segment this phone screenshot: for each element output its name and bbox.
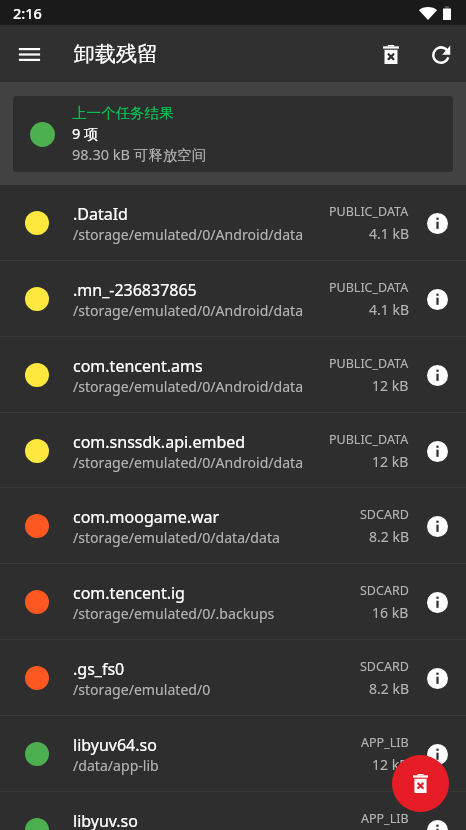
button[interactable]: Info: [419, 584, 455, 620]
button[interactable]: Info: [419, 736, 455, 772]
staticText: 2:16: [13, 3, 42, 23]
button[interactable]: .mn_-236837865: [0, 261, 466, 337]
staticText: 8.2 kB: [369, 527, 409, 546]
button[interactable]: Info: [419, 812, 455, 830]
staticText: 8.2 kB: [369, 679, 409, 698]
staticText: /storage/emulated/0: [73, 680, 211, 699]
staticText: /storage/emulated/0/Android/data: [73, 377, 304, 396]
staticText: com.snssdk.api.embed: [73, 431, 246, 453]
staticText: APP_LIB: [361, 810, 409, 827]
staticText: 9 项: [72, 123, 99, 143]
staticText: com.moogame.war: [73, 506, 220, 528]
button[interactable]: .gs_fs0: [0, 640, 466, 716]
staticText: APP_LIB: [361, 734, 409, 751]
staticText: PUBLIC_DATA: [329, 431, 409, 448]
button[interactable]: libyuv64.so: [0, 716, 466, 792]
staticText: 12 kB: [372, 755, 409, 774]
button[interactable]: Info: [419, 357, 455, 393]
button[interactable]: Info: [419, 205, 455, 241]
button[interactable]: Menu: [11, 36, 47, 72]
button[interactable]: Info: [419, 508, 455, 544]
staticText: com.tencent.ams: [73, 355, 203, 377]
staticText: /storage/emulated/0/Android/data: [73, 225, 304, 244]
staticText: .DataId: [73, 203, 128, 225]
staticText: 12 kB: [372, 452, 409, 471]
button[interactable]: com.tencent.ig: [0, 564, 466, 640]
staticText: 4.1 kB: [369, 224, 409, 243]
button[interactable]: Info: [419, 660, 455, 696]
button[interactable]: Delete all: [372, 35, 410, 73]
button[interactable]: com.tencent.ams: [0, 337, 466, 413]
button[interactable]: com.moogame.war: [0, 488, 466, 564]
staticText: /storage/emulated/0/data/data: [73, 528, 280, 547]
button[interactable]: Refresh: [422, 35, 460, 73]
staticText: SDCARD: [360, 582, 409, 599]
staticText: .gs_fs0: [73, 658, 125, 680]
staticText: PUBLIC_DATA: [329, 203, 409, 220]
staticText: 上一个任务结果: [72, 104, 174, 122]
staticText: 98.30 kB 可释放空间: [72, 144, 207, 164]
staticText: PUBLIC_DATA: [329, 355, 409, 372]
button[interactable]: Info: [419, 281, 455, 317]
staticText: .mn_-236837865: [73, 279, 197, 301]
staticText: /storage/emulated/0/Android/data: [73, 301, 304, 320]
staticText: /data/app-lib: [73, 756, 159, 775]
staticText: com.tencent.ig: [73, 582, 185, 604]
staticText: 16 kB: [372, 603, 409, 622]
staticText: PUBLIC_DATA: [329, 279, 409, 296]
staticText: SDCARD: [360, 506, 409, 523]
staticText: libyuv.so: [73, 810, 138, 830]
staticText: /storage/emulated/0/.backups: [73, 604, 275, 623]
staticText: 卸载残留: [74, 41, 158, 67]
button[interactable]: libyuv.so: [0, 792, 466, 830]
staticText: /storage/emulated/0/Android/data: [73, 453, 304, 472]
staticText: SDCARD: [360, 658, 409, 675]
button[interactable]: 上一个任务结果: [13, 96, 453, 172]
staticText: 12 kB: [372, 376, 409, 395]
button[interactable]: Delete: [392, 755, 449, 812]
button[interactable]: com.snssdk.api.embed: [0, 413, 466, 489]
button[interactable]: Info: [419, 433, 455, 469]
staticText: 4.1 kB: [369, 300, 409, 319]
button[interactable]: .DataId: [0, 185, 466, 261]
staticText: libyuv64.so: [73, 734, 157, 756]
